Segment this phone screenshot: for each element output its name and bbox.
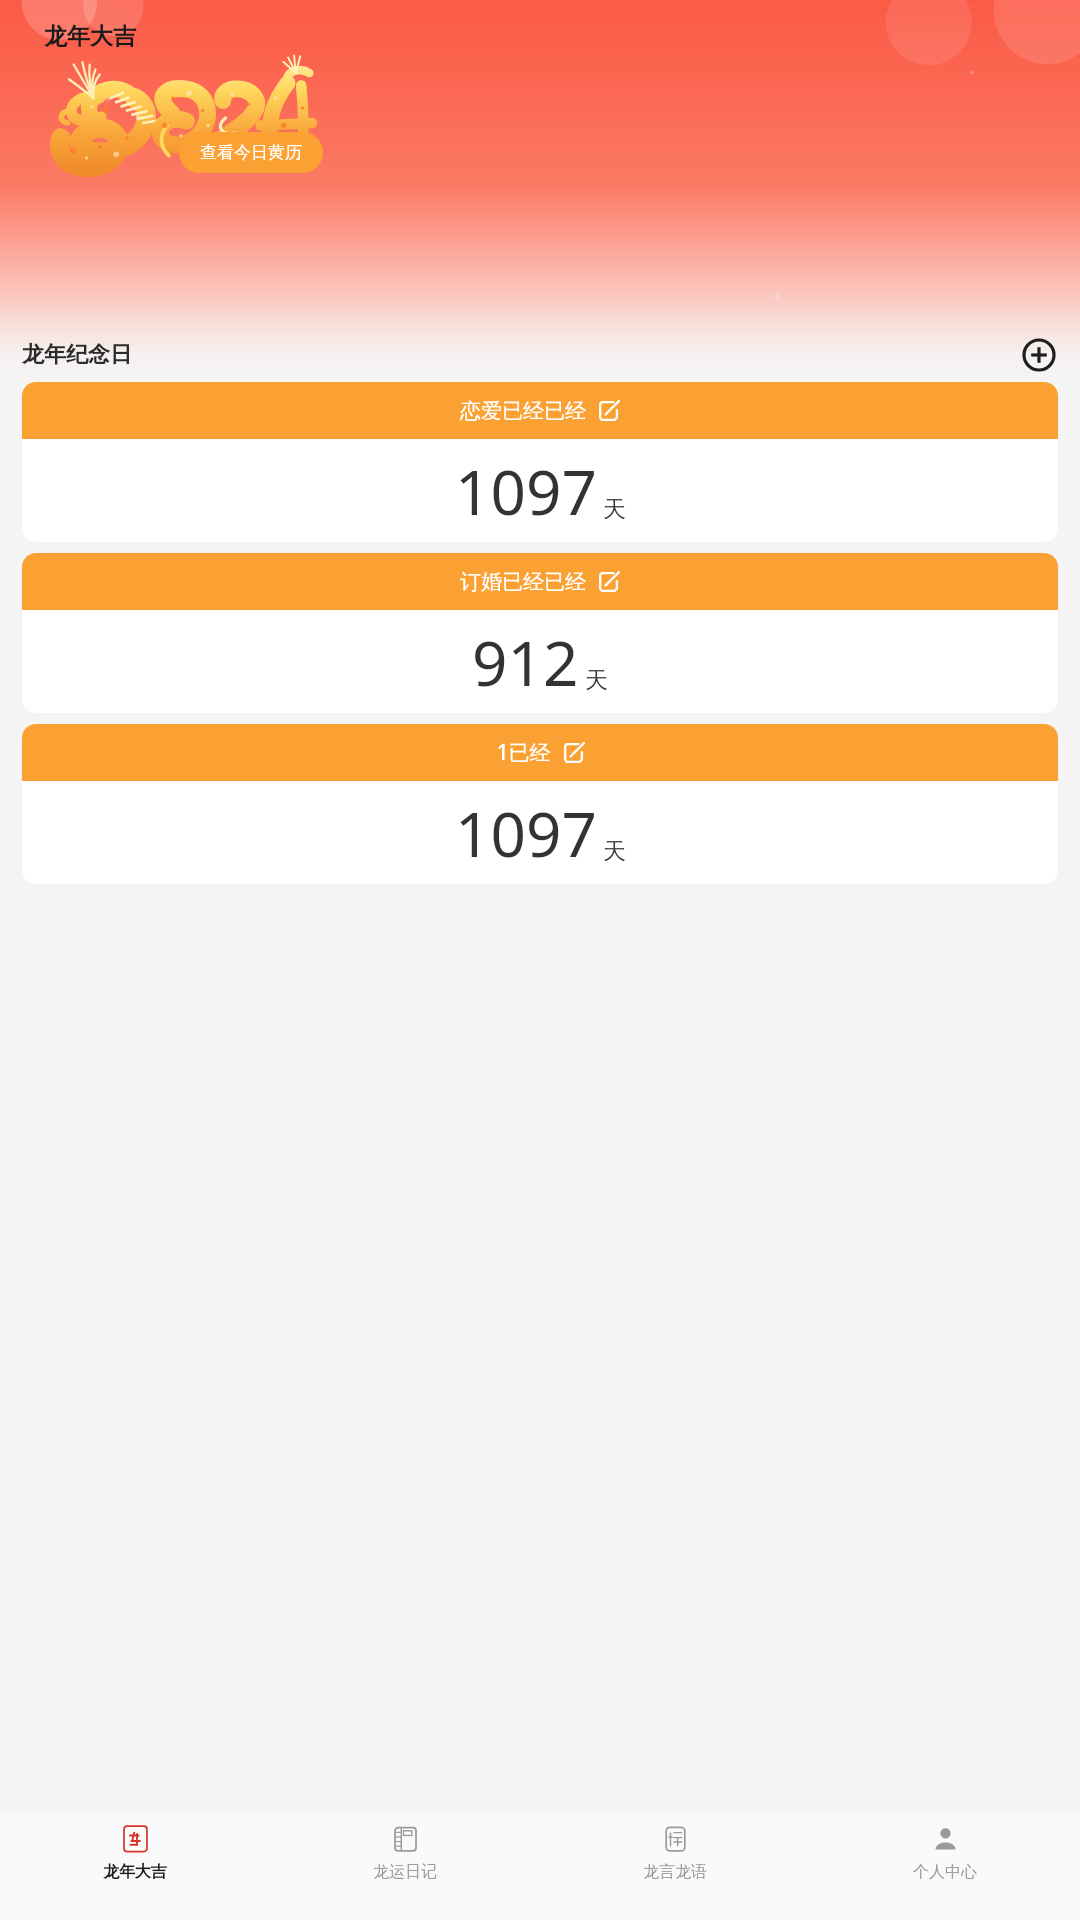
button[interactable]: 1已经 [22, 724, 1058, 884]
staticText: 1097 [455, 449, 597, 533]
button[interactable]: Edit 1已经 [563, 742, 585, 764]
button[interactable]: 龙运日记 [270, 1812, 540, 1920]
staticText: 个人中心 [913, 1862, 977, 1882]
staticText: 龙年纪念日 [22, 341, 132, 369]
button[interactable]: 龙言龙语 [540, 1812, 810, 1920]
staticText: 天 [585, 666, 608, 695]
button[interactable]: 恋爱已经已经 [22, 382, 1058, 542]
staticText: 订婚已经已经 [460, 569, 586, 595]
button[interactable]: Add anniversary [1022, 338, 1056, 372]
staticText: 龙年大吉 [103, 1862, 167, 1882]
staticText: 龙言龙语 [643, 1862, 707, 1882]
staticText: 查看今日黄历 [200, 142, 302, 163]
button[interactable]: 个人中心 [810, 1812, 1080, 1920]
staticText: 天 [603, 495, 626, 524]
staticText: 龙运日记 [373, 1862, 437, 1882]
button[interactable]: Edit 订婚已经已经 [598, 571, 620, 593]
staticText: 1已经 [496, 738, 551, 767]
staticText: 恋爱已经已经 [460, 398, 586, 424]
button[interactable]: Edit 恋爱已经已经 [598, 400, 620, 422]
button[interactable]: 查看今日黄历 [179, 132, 323, 173]
button[interactable]: 龙年大吉 [0, 1812, 270, 1920]
staticText: 1097 [455, 791, 597, 875]
staticText: 912 [472, 620, 579, 704]
staticText: 天 [603, 837, 626, 866]
staticText: 龙年大吉 [44, 22, 136, 51]
button[interactable]: 订婚已经已经 [22, 553, 1058, 713]
